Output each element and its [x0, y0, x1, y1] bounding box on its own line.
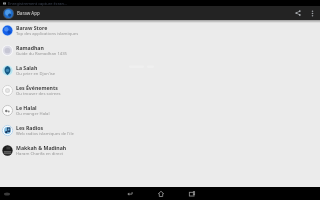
button[interactable]: Share — [290, 6, 305, 20]
staticText: Le Halal — [16, 104, 37, 111]
button[interactable]: Les Événements — [0, 80, 320, 100]
staticText: Web radios islamiques de l'ile — [16, 131, 74, 137]
button[interactable]: Home — [145, 187, 176, 200]
button[interactable]: Baraw Store — [0, 20, 320, 40]
staticText: Ou trouver des soirees — [16, 91, 61, 97]
staticText: Les Événements — [16, 84, 58, 91]
button[interactable]: Les Radios — [0, 120, 320, 140]
button[interactable]: Screen recording — [4, 191, 10, 197]
staticText: Ramadhan — [16, 44, 44, 51]
staticText: Top des applications islamiques — [16, 31, 79, 37]
button[interactable]: Le Halal — [0, 100, 320, 120]
button[interactable]: Back — [114, 187, 145, 200]
staticText: Makkah & Madinah — [16, 144, 67, 151]
staticText: Ou prier en Djon'ise — [16, 71, 56, 77]
staticText: La Salah — [16, 64, 38, 71]
button[interactable]: Ramadhan — [0, 40, 320, 60]
staticText: Ou manger Halal — [16, 111, 50, 117]
staticText: Les Radios — [16, 124, 44, 131]
button[interactable]: Makkah & Madinah — [0, 140, 320, 160]
button[interactable]: More options — [305, 6, 320, 20]
button[interactable]: La Salah — [0, 60, 320, 80]
staticText: Guide du Ramadhan 1435 — [16, 51, 67, 57]
staticText: Baraw Store — [16, 24, 48, 31]
staticText: Haram Charifa en direct — [16, 151, 63, 157]
staticText: Enregistrement capture écran... — [8, 1, 68, 6]
staticText: Baraw App — [17, 10, 40, 16]
button[interactable]: Recents — [176, 187, 207, 200]
